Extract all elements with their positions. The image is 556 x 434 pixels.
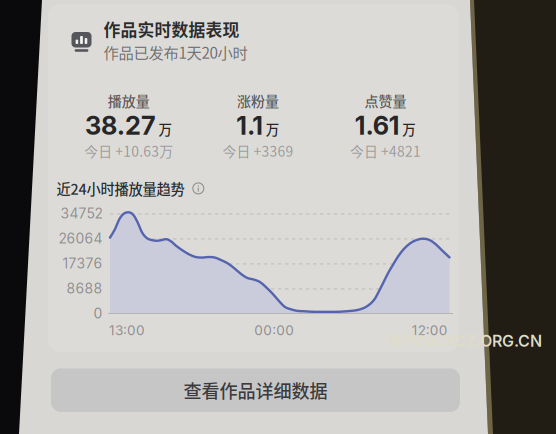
staticText: 12:00 bbox=[412, 322, 448, 339]
staticText: 万 bbox=[159, 119, 173, 139]
staticText: 涨粉量 bbox=[237, 90, 279, 111]
staticText: 今日 +3369 bbox=[222, 141, 293, 161]
staticText: 查看作品详细数据 bbox=[183, 377, 327, 403]
staticText: 13:00 bbox=[109, 322, 145, 339]
staticText: 1.61 bbox=[355, 110, 400, 141]
staticText: 0 bbox=[93, 305, 102, 322]
staticText: 万 bbox=[402, 119, 416, 139]
staticText: 作品已发布1天20小时 bbox=[103, 41, 247, 63]
staticText: 作品实时数据表现 bbox=[103, 17, 239, 41]
staticText: 万 bbox=[266, 119, 280, 139]
staticText: 8688 bbox=[66, 280, 102, 297]
staticText: 播放量 bbox=[108, 90, 150, 111]
staticText: 点赞量 bbox=[364, 90, 406, 111]
staticText: 26064 bbox=[58, 230, 102, 247]
staticText: 1.1 bbox=[236, 110, 263, 141]
staticText: 今日 +4821 bbox=[350, 141, 421, 161]
staticText: 17376 bbox=[62, 255, 102, 272]
staticText: 今日 +10.63万 bbox=[84, 141, 173, 161]
button[interactable]: 查看作品详细数据 bbox=[0, 0, 409, 44]
staticText: 38.27 bbox=[85, 110, 156, 141]
staticText: 00:00 bbox=[254, 322, 294, 339]
staticText: WWW.XCZ.ORG.CN bbox=[389, 331, 542, 351]
staticText: 34752 bbox=[60, 205, 102, 222]
staticText: 近24小时播放量趋势 bbox=[56, 178, 184, 199]
